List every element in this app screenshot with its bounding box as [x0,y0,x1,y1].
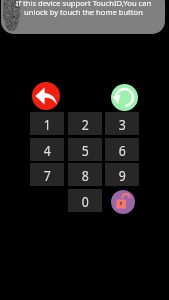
button[interactable]: Back [32,82,60,110]
staticText: 1 [44,114,51,134]
button[interactable]: 1 [30,112,64,135]
button[interactable]: 0 [68,189,102,212]
button[interactable]: 5 [68,138,102,161]
button[interactable]: Refresh [111,84,138,111]
button[interactable]: Unlock [111,190,135,214]
staticText: 3 [119,114,126,134]
staticText: 6 [119,140,126,160]
button[interactable]: 4 [30,138,64,161]
staticText: 2 [82,114,89,134]
button[interactable]: 3 [105,112,139,135]
button[interactable]: 8 [68,163,102,186]
staticText: 7 [44,165,51,185]
staticText: If this device support TouchID,You can u… [0,0,168,17]
button[interactable]: 6 [105,138,139,161]
staticText: 4 [44,140,51,160]
button[interactable]: 9 [105,163,139,186]
button[interactable]: 7 [30,163,64,186]
staticText: 0 [82,191,89,211]
staticText: 5 [82,140,89,160]
staticText: 8 [82,165,89,185]
staticText: 9 [119,165,126,185]
button[interactable]: 2 [68,112,102,135]
